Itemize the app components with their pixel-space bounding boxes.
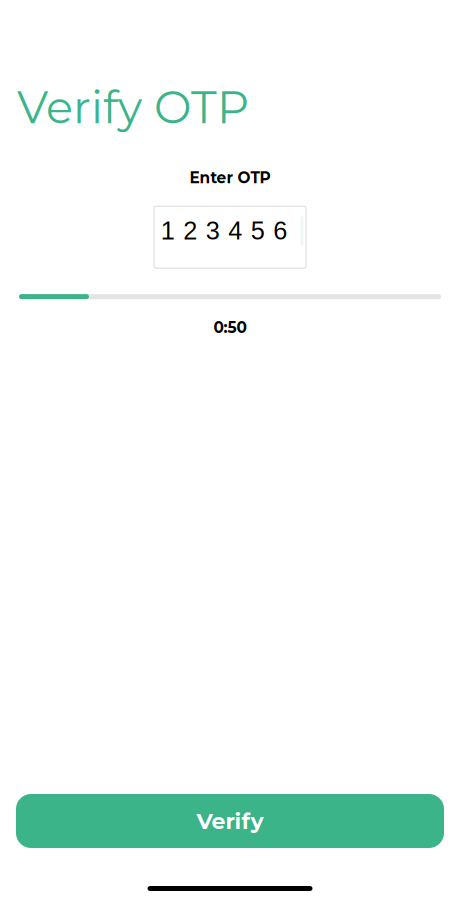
staticText: Verify [196, 808, 263, 834]
staticText: 1 [161, 216, 175, 245]
staticText: 5 [251, 216, 265, 245]
button[interactable]: Verify [16, 794, 444, 848]
staticText: Verify OTP [17, 80, 249, 134]
staticText: 3 [206, 216, 220, 245]
staticText: 0:50 [213, 318, 246, 337]
staticText: 4 [228, 216, 242, 245]
staticText: 2 [183, 216, 197, 245]
staticText: Enter OTP [189, 168, 270, 187]
staticText: 6 [273, 216, 287, 245]
